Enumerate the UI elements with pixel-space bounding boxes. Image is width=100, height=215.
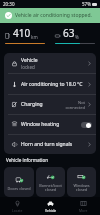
staticText: km [31, 34, 38, 40]
staticText: Bonnet/boot closed [39, 183, 62, 193]
button[interactable]: Horn and turn signals [4, 135, 96, 154]
button[interactable]: 63 [55, 23, 95, 44]
staticText: 57% [82, 1, 91, 7]
staticText: Vehicle [21, 57, 38, 64]
staticText: Locate [12, 208, 23, 213]
button[interactable]: Air conditioning to 18.0 °C [4, 74, 96, 94]
staticText: Horn and turn signals [21, 141, 73, 148]
staticText: locked [21, 64, 35, 70]
staticText: Window heating [21, 121, 60, 128]
staticText: Charging [21, 101, 43, 108]
staticText: More [79, 208, 88, 213]
staticText: Windows closed [73, 183, 90, 193]
staticText: Vehicle information [6, 157, 49, 163]
button[interactable]: Doors closed [4, 167, 34, 197]
button[interactable]: Windows closed [67, 167, 96, 197]
button[interactable]: 410 [5, 23, 45, 44]
button[interactable]: Vehicle [34, 197, 67, 215]
button[interactable]: Vehicle [4, 53, 96, 73]
button[interactable]: Window heating [4, 115, 96, 134]
staticText: Doors closed [7, 186, 31, 191]
staticText: Vehicle air conditioning stopped. [15, 12, 92, 19]
staticText: 410 [13, 26, 31, 40]
button[interactable]: Bonnet/boot closed [36, 167, 65, 197]
staticText: 63 [63, 26, 75, 40]
staticText: 20:30 [3, 1, 15, 7]
button[interactable]: Locate [0, 197, 34, 215]
staticText: % [75, 34, 79, 40]
button[interactable]: Charging [4, 95, 96, 114]
staticText: Vehicle [45, 208, 57, 213]
staticText: Air conditioning to 18.0 °C [21, 81, 83, 88]
staticText: Not connected [65, 100, 85, 110]
button[interactable]: More [67, 197, 100, 215]
